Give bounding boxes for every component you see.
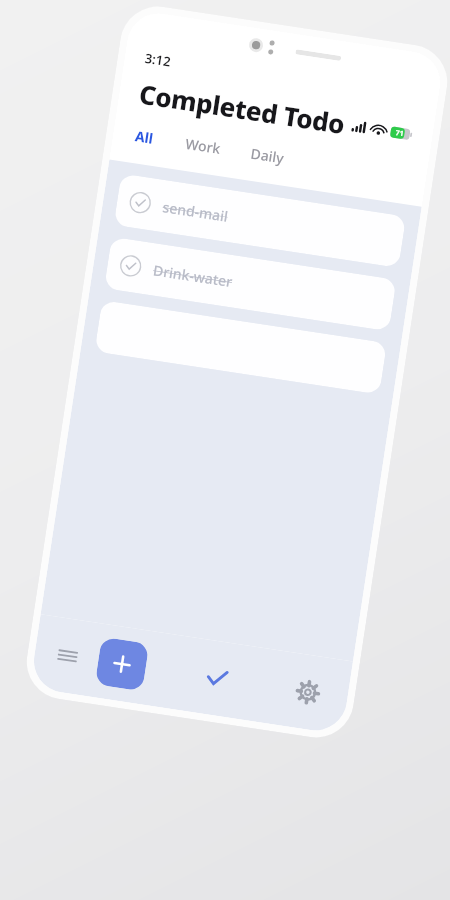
button[interactable]: Work (182, 132, 225, 160)
staticText: Work (184, 134, 223, 158)
button[interactable]: Daily (247, 141, 288, 170)
button[interactable]: Settings (285, 669, 331, 715)
button[interactable] (94, 300, 387, 394)
staticText: Daily (249, 144, 286, 168)
staticText: 3:12 (144, 49, 172, 70)
staticText: Drink-water (152, 260, 234, 291)
staticText: Completed Todo (137, 75, 347, 141)
staticText: 71 (395, 128, 405, 139)
button[interactable]: Add todo (95, 637, 149, 691)
button[interactable]: send-mail (114, 173, 406, 268)
staticText: All (134, 126, 155, 148)
button[interactable]: All (131, 124, 158, 150)
button[interactable]: Menu (48, 636, 87, 675)
staticText: send-mail (161, 197, 230, 226)
button[interactable]: Drink-water (104, 237, 396, 331)
button[interactable]: Completed (194, 656, 240, 701)
